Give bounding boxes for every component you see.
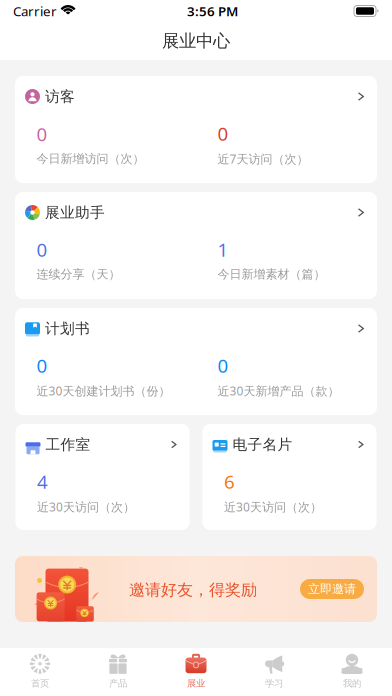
staticText: 6 bbox=[224, 469, 235, 494]
staticText: 连续分享（天） bbox=[36, 267, 120, 281]
staticText: 访客 bbox=[45, 87, 75, 105]
staticText: Carrier bbox=[13, 2, 57, 20]
staticText: 学习 bbox=[265, 678, 283, 689]
button[interactable]: 工作室 bbox=[15, 424, 189, 530]
staticText: 电子名片 bbox=[232, 435, 292, 453]
staticText: 近30天访问（次） bbox=[37, 499, 135, 515]
staticText: 今日新增素材（篇） bbox=[217, 267, 325, 281]
staticText: 4 bbox=[37, 469, 48, 494]
staticText: 0 bbox=[217, 121, 228, 146]
staticText: 3:56 PM bbox=[187, 2, 238, 20]
button[interactable]: 电子名片 bbox=[202, 424, 376, 530]
button[interactable]: 展业 bbox=[157, 648, 235, 696]
staticText: 我的 bbox=[343, 678, 361, 689]
staticText: 首页 bbox=[31, 678, 49, 689]
staticText: 今日新增访问（次） bbox=[36, 151, 144, 166]
staticText: 近30天新增产品（款） bbox=[217, 383, 339, 399]
button[interactable]: 邀请好友，得奖励 bbox=[15, 556, 377, 622]
button[interactable]: 产品 bbox=[79, 648, 157, 696]
staticText: 立即邀请 bbox=[308, 582, 356, 596]
staticText: 0 bbox=[36, 237, 47, 262]
staticText: 0 bbox=[217, 353, 228, 378]
staticText: 近30天创建计划书（份） bbox=[36, 383, 170, 399]
staticText: 产品 bbox=[109, 678, 127, 689]
button[interactable]: 我的 bbox=[313, 648, 391, 696]
button[interactable]: 首页 bbox=[1, 648, 79, 696]
staticText: 展业 bbox=[187, 678, 205, 689]
staticText: 展业中心 bbox=[162, 30, 230, 52]
button[interactable]: 计划书 bbox=[15, 308, 377, 415]
staticText: 0 bbox=[36, 122, 47, 146]
staticText: 1 bbox=[217, 237, 228, 262]
staticText: 计划书 bbox=[45, 319, 90, 337]
staticText: 展业助手 bbox=[45, 203, 105, 221]
staticText: 近30天访问（次） bbox=[224, 499, 322, 515]
staticText: 0 bbox=[36, 353, 47, 378]
button[interactable]: 展业助手 bbox=[15, 192, 377, 299]
staticText: 邀请好友，得奖励 bbox=[129, 580, 257, 600]
staticText: 近7天访问（次） bbox=[217, 151, 308, 167]
button[interactable]: 访客 bbox=[15, 76, 377, 183]
staticText: 工作室 bbox=[45, 435, 90, 453]
button[interactable]: 学习 bbox=[235, 648, 313, 696]
